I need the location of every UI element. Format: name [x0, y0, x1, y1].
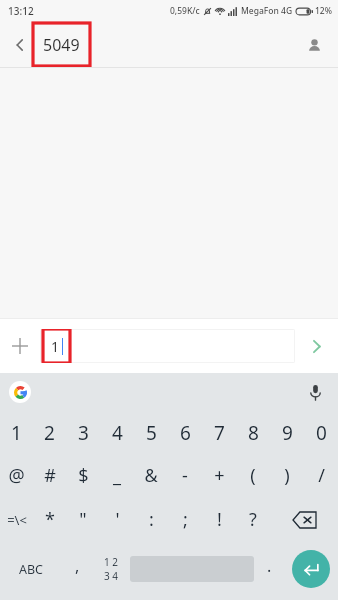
button[interactable]: 0	[304, 411, 338, 454]
staticText: 9	[282, 420, 293, 446]
button[interactable]: 3	[66, 411, 100, 454]
button[interactable]: $	[66, 454, 100, 497]
staticText: 7	[214, 420, 225, 446]
staticText: _	[113, 463, 121, 488]
button[interactable]: ABC	[0, 542, 62, 596]
staticText: #	[44, 463, 56, 488]
button[interactable]: 4	[100, 411, 134, 454]
staticText: 6	[180, 420, 191, 446]
button[interactable]: 1	[0, 411, 33, 454]
staticText: 3 4	[104, 569, 119, 583]
button[interactable]: /	[304, 454, 338, 497]
staticText: .	[267, 555, 272, 577]
staticText: 4	[112, 420, 123, 446]
staticText: 0	[316, 420, 327, 446]
button[interactable]: ,	[62, 542, 92, 596]
button[interactable]: ;	[168, 497, 202, 542]
button[interactable]: 9	[270, 411, 304, 454]
button[interactable]: 8	[236, 411, 270, 454]
staticText: +	[214, 463, 225, 488]
staticText: MegaFon 4G	[241, 5, 293, 17]
button[interactable]: _	[100, 454, 134, 497]
button[interactable]: #	[33, 454, 66, 497]
button[interactable]: Backspace	[270, 497, 338, 542]
button[interactable]: "	[66, 497, 100, 542]
button[interactable]: 2	[33, 411, 66, 454]
button[interactable]: Send	[295, 325, 338, 368]
staticText: ABC	[19, 561, 44, 578]
button[interactable]: Voice input	[302, 379, 328, 405]
button[interactable]: :	[134, 497, 168, 542]
button[interactable]: Contact profile	[296, 27, 332, 63]
staticText: 5049	[43, 34, 80, 56]
button[interactable]: .	[254, 542, 284, 596]
staticText: '	[115, 507, 120, 532]
staticText: 2	[44, 420, 55, 446]
staticText: /	[318, 463, 325, 488]
staticText: )	[284, 463, 290, 488]
button[interactable]: (	[236, 454, 270, 497]
staticText: $	[78, 463, 89, 488]
staticText: !	[217, 507, 222, 532]
staticText: "	[79, 507, 87, 532]
staticText: ?	[249, 507, 257, 532]
button[interactable]: =\<	[0, 497, 33, 542]
staticText: *	[45, 507, 55, 532]
button[interactable]: -	[168, 454, 202, 497]
staticText: 0,59K/c	[170, 5, 200, 17]
button[interactable]: Attach	[0, 326, 40, 366]
button[interactable]: ?	[236, 497, 270, 542]
button[interactable]: 5049	[33, 23, 90, 66]
staticText: 3	[78, 420, 89, 446]
button[interactable]: Enter	[292, 550, 330, 588]
button[interactable]: 1	[40, 329, 295, 363]
button[interactable]: 5	[134, 411, 168, 454]
staticText: 13:12	[8, 4, 34, 18]
staticText: :	[149, 507, 154, 532]
button[interactable]: 6	[168, 411, 202, 454]
staticText: @	[8, 463, 25, 488]
button[interactable]: Google	[8, 380, 32, 404]
staticText: (	[250, 463, 256, 488]
button[interactable]: +	[202, 454, 236, 497]
staticText: 1 2	[104, 555, 119, 569]
staticText: =\<	[7, 511, 27, 529]
button[interactable]: )	[270, 454, 304, 497]
staticText: 5	[146, 420, 157, 446]
button[interactable]: 1 2	[92, 542, 130, 596]
button[interactable]: !	[202, 497, 236, 542]
button[interactable]: @	[0, 454, 33, 497]
staticText: ;	[183, 507, 188, 532]
button[interactable]: Back	[0, 25, 40, 65]
staticText: &	[144, 463, 158, 488]
button[interactable]: '	[100, 497, 134, 542]
button[interactable]: &	[134, 454, 168, 497]
button[interactable]: *	[33, 497, 66, 542]
staticText: 8	[248, 420, 259, 446]
staticText: 1	[51, 337, 60, 356]
staticText: -	[182, 463, 188, 488]
staticText: 1	[11, 420, 22, 446]
staticText: ,	[75, 555, 80, 577]
staticText: 12%	[315, 5, 332, 17]
button[interactable]: 7	[202, 411, 236, 454]
